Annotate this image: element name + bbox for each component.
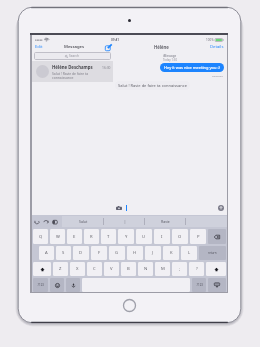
button[interactable] (208, 278, 226, 292)
button[interactable]: Salut (62, 215, 104, 228)
button[interactable]: J (145, 246, 161, 260)
staticText: return (208, 251, 217, 255)
staticText: H (133, 250, 137, 256)
staticText: iMessage (163, 54, 177, 58)
button[interactable]: H (127, 246, 143, 260)
staticText: .?123 (37, 283, 44, 287)
staticText: E (73, 234, 76, 240)
staticText: Salut ! Ravie de faire ta connaissance (52, 71, 89, 80)
button[interactable]: Details (209, 42, 225, 52)
button[interactable]: Z (53, 262, 68, 276)
button[interactable]: D (73, 246, 89, 260)
button[interactable]: return (199, 246, 226, 260)
staticText: Search (69, 54, 80, 58)
staticText: C (93, 266, 96, 272)
staticText: D (79, 250, 83, 256)
staticText: R (90, 234, 93, 240)
button[interactable]: G (109, 246, 125, 260)
staticText: U (142, 234, 146, 240)
staticText: N (144, 266, 148, 272)
staticText: ? (196, 266, 198, 272)
button[interactable]: O (172, 229, 188, 244)
button[interactable]: .?123 (192, 278, 206, 292)
button[interactable] (186, 215, 227, 228)
button[interactable]: .?123 (33, 278, 48, 292)
button[interactable]: B (121, 262, 136, 276)
button[interactable]: Edit (34, 42, 44, 52)
staticText: 100% (206, 38, 214, 42)
staticText: Salut ! Ravie de faire ta connaissance (118, 83, 187, 88)
button[interactable]: V (104, 262, 119, 276)
staticText: Details (210, 44, 224, 50)
button[interactable]: New message (105, 44, 112, 51)
staticText: A (45, 250, 48, 256)
button[interactable]: S (56, 246, 71, 260)
staticText: | (124, 219, 126, 224)
button[interactable]: K (163, 246, 179, 260)
button[interactable]: Search (34, 52, 111, 60)
staticText: K (170, 250, 173, 256)
button[interactable]: M (155, 262, 170, 276)
staticText: S (62, 250, 65, 256)
button[interactable]: N (138, 262, 153, 276)
staticText: P (197, 234, 200, 240)
staticText: L (188, 250, 191, 256)
button[interactable] (33, 262, 51, 276)
button[interactable]: ; (172, 262, 187, 276)
button[interactable]: Paste (52, 219, 58, 225)
staticText: Hélène Deschamps (52, 64, 93, 70)
staticText: Salut (79, 219, 88, 224)
button[interactable]: Redo (43, 219, 49, 225)
staticText: ; (179, 266, 181, 272)
button[interactable]: W (50, 229, 65, 244)
staticText: V (110, 266, 113, 272)
staticText: 16:30 (102, 65, 111, 69)
staticText: Messages (64, 44, 85, 50)
staticText: Today 1:30 (163, 58, 178, 62)
button[interactable]: Undo (34, 219, 40, 225)
staticText: B (127, 266, 130, 272)
button[interactable] (208, 229, 226, 244)
button[interactable]: F (91, 246, 107, 260)
button[interactable]: X (70, 262, 85, 276)
button[interactable]: I (154, 229, 170, 244)
button[interactable]: Q (33, 229, 48, 244)
staticText: Ravie (161, 219, 170, 224)
button[interactable]: L (181, 246, 197, 260)
button[interactable]: R (84, 229, 99, 244)
button[interactable]: Salut ! Ravie de faire ta connaissance (118, 83, 187, 88)
button[interactable]: Camera (116, 205, 122, 211)
button[interactable]: U (136, 229, 152, 244)
staticText: Hélène (154, 44, 169, 50)
staticText: W (56, 234, 60, 240)
button[interactable]: P (190, 229, 206, 244)
staticText: 09:41 (111, 38, 120, 42)
staticText: Edit (35, 44, 43, 50)
staticText: J (152, 250, 154, 256)
button[interactable]: C (87, 262, 102, 276)
button[interactable]: Hey it was nice meeting you :) (164, 65, 220, 70)
staticText: O (178, 234, 182, 240)
button[interactable] (50, 278, 64, 292)
button[interactable]: Y (118, 229, 134, 244)
button[interactable]: Ravie (145, 215, 186, 228)
staticText: Z (59, 266, 62, 272)
button[interactable]: E (67, 229, 82, 244)
button[interactable]: Send (218, 205, 224, 211)
staticText: Y (125, 234, 128, 240)
staticText: M (161, 266, 165, 272)
button[interactable]: Hélène Deschamps (36, 61, 111, 82)
staticText: T (107, 234, 110, 240)
button[interactable] (66, 278, 80, 292)
staticText: I (161, 234, 163, 240)
staticText: .?123 (196, 283, 203, 287)
button[interactable]: T (101, 229, 116, 244)
staticText: Delivered (212, 74, 223, 77)
button[interactable]: ? (189, 262, 204, 276)
button[interactable]: | (104, 215, 145, 228)
staticText: X (76, 266, 79, 272)
staticText: G (115, 250, 119, 256)
button[interactable]: A (39, 246, 54, 260)
button[interactable] (206, 262, 226, 276)
